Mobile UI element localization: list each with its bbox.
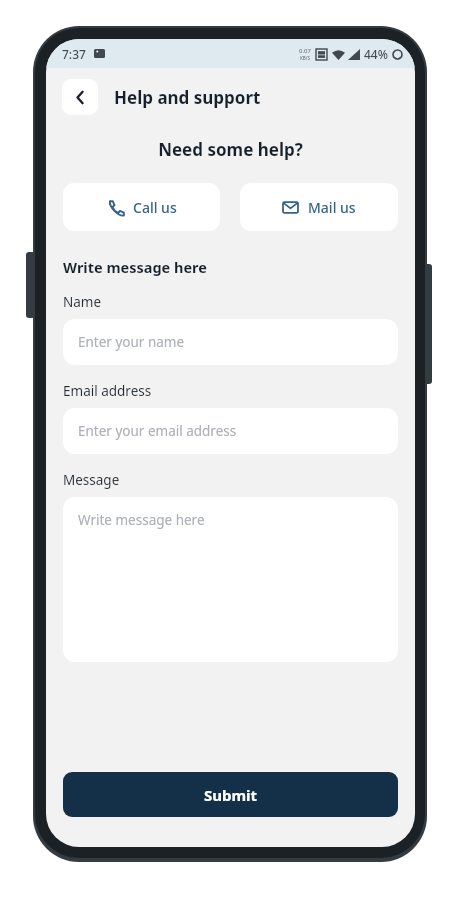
button[interactable]: Call us [63,183,220,231]
staticText: 44% [364,46,388,62]
button[interactable]: Enter your email address [63,408,398,454]
staticText: Write message here [63,257,207,277]
staticText: KB/S [300,55,310,61]
staticText: Enter your email address [78,422,237,440]
staticText: Need some help? [46,138,415,161]
staticText: Write message here [78,511,205,529]
button[interactable]: Mail us [240,183,398,231]
button[interactable]: Back [62,79,98,115]
staticText: 7:37 [62,46,86,62]
staticText: Help and support [114,86,261,109]
staticText: Enter your name [78,333,185,351]
staticText: Name [63,293,102,311]
button[interactable]: Write message here [63,497,398,662]
staticText: Submit [204,785,258,805]
staticText: Message [63,471,120,489]
staticText: Email address [63,382,152,400]
button[interactable]: Submit [63,772,398,817]
button[interactable]: Enter your name [63,319,398,365]
staticText: Call us [133,198,177,217]
staticText: 0.07 [299,47,311,55]
staticText: Mail us [308,198,356,217]
